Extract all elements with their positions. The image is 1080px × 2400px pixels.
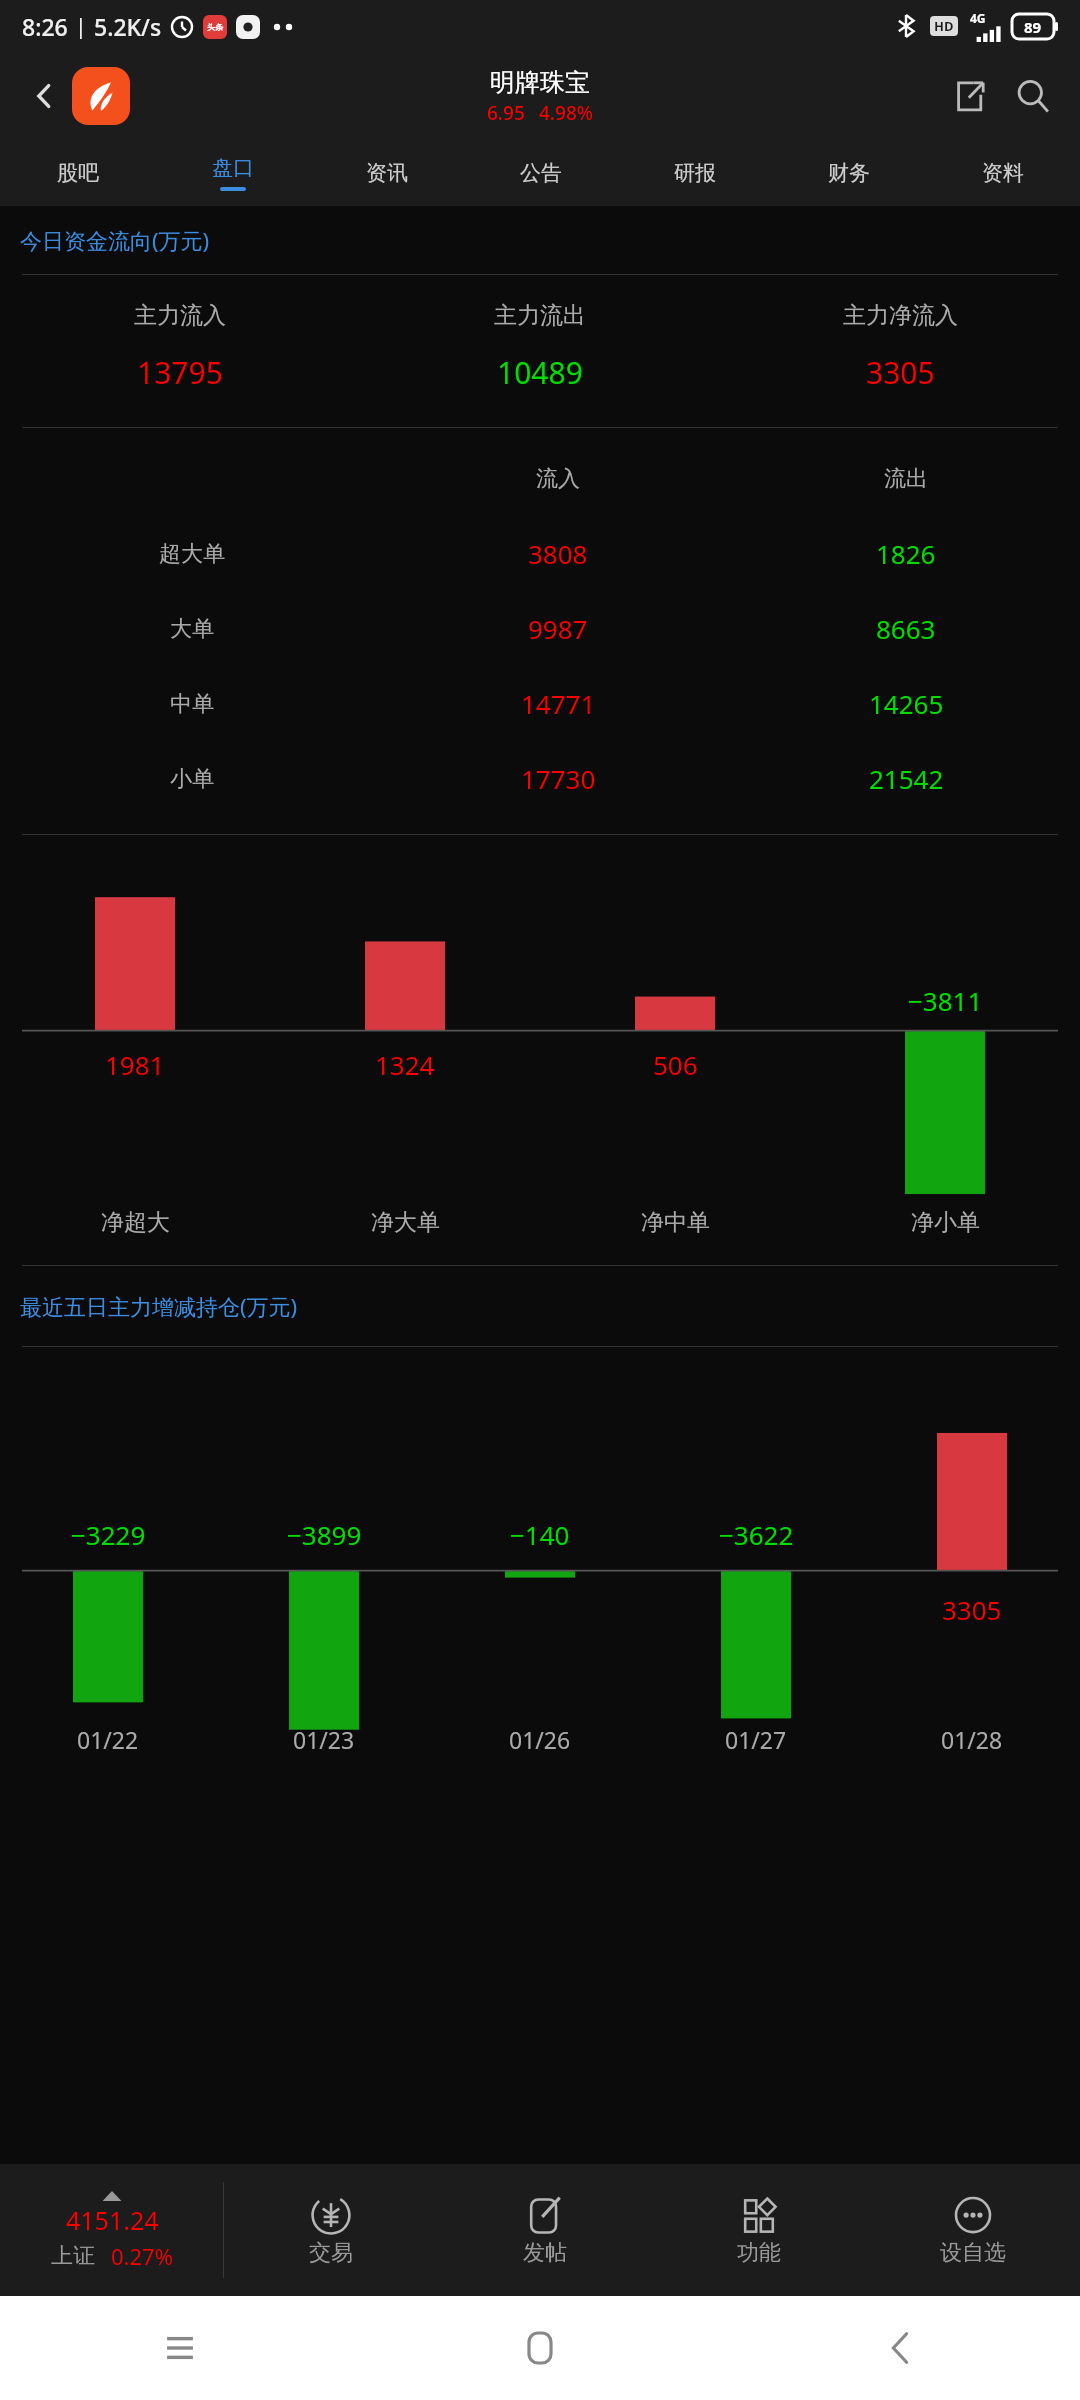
staticText: 今日资金流向(万元): [20, 225, 210, 255]
staticText: 01/28: [941, 1724, 1003, 1755]
staticText: 上证: [51, 2242, 95, 2270]
staticText: 01/27: [725, 1724, 787, 1755]
staticText: 1981: [105, 1047, 165, 1082]
staticText: 3305: [942, 1592, 1002, 1627]
staticText: 主力净流入: [843, 301, 958, 330]
staticText: HD: [934, 17, 954, 35]
staticText: 0.27%: [111, 2241, 173, 2271]
staticText: 最近五日主力增减持仓(万元): [20, 1291, 298, 1321]
staticText: 1324: [375, 1047, 435, 1082]
staticText: 设自选: [940, 2239, 1006, 2267]
staticText: 资料: [982, 160, 1024, 186]
staticText: 公告: [520, 160, 562, 186]
staticText: 6.95: [487, 100, 525, 126]
staticText: 17730: [521, 761, 596, 796]
other: Home: [527, 2331, 553, 2365]
staticText: 4.98%: [539, 100, 593, 126]
button[interactable]: 财务: [772, 140, 926, 206]
staticText: 流入: [536, 465, 580, 493]
staticText: 净中单: [641, 1208, 710, 1237]
staticText: 506: [653, 1047, 698, 1082]
staticText: 9987: [528, 611, 588, 646]
other: Back: [889, 2331, 911, 2365]
button[interactable]: 股吧: [0, 140, 155, 206]
staticText: 净小单: [911, 1208, 980, 1237]
staticText: 3305: [866, 352, 935, 393]
staticText: 8:26: [22, 11, 68, 42]
staticText: 4151.24: [66, 2203, 159, 2237]
button[interactable]: Share: [942, 68, 998, 124]
button[interactable]: 功能: [652, 2164, 866, 2296]
staticText: 功能: [737, 2239, 781, 2267]
staticText: 01/22: [77, 1724, 139, 1755]
staticText: 资讯: [366, 160, 408, 186]
staticText: −3229: [71, 1517, 146, 1552]
staticText: −3622: [719, 1517, 794, 1552]
button[interactable]: 资讯: [310, 140, 464, 206]
staticText: 超大单: [159, 540, 225, 568]
staticText: 14771: [521, 686, 596, 721]
button[interactable]: 盘口: [155, 140, 310, 206]
staticText: 小单: [170, 765, 214, 793]
staticText: 中单: [170, 690, 214, 718]
staticText: −3811: [908, 983, 983, 1018]
button[interactable]: 研报: [618, 140, 772, 206]
staticText: 主力流出: [494, 301, 586, 330]
button[interactable]: 设自选: [866, 2164, 1080, 2296]
staticText: |: [75, 12, 87, 41]
staticText: 明牌珠宝: [490, 67, 590, 98]
button[interactable]: 4151.24: [0, 2164, 223, 2296]
staticText: 14265: [869, 686, 944, 721]
staticText: 净超大: [101, 1208, 170, 1237]
staticText: 净大单: [371, 1208, 440, 1237]
staticText: 1826: [876, 536, 936, 571]
staticText: 头条: [207, 22, 223, 32]
staticText: 89: [1024, 17, 1042, 37]
staticText: 主力流入: [134, 301, 226, 330]
button[interactable]: Back: [16, 68, 72, 124]
button[interactable]: 公告: [464, 140, 618, 206]
button[interactable]: 资料: [926, 140, 1080, 206]
staticText: 大单: [170, 615, 214, 643]
staticText: 流出: [884, 465, 928, 493]
button[interactable]: Search: [1004, 67, 1062, 125]
staticText: −140: [510, 1517, 570, 1552]
staticText: 10489: [497, 352, 583, 393]
other: Recents: [163, 2335, 197, 2361]
staticText: 股吧: [57, 160, 99, 186]
staticText: 研报: [674, 160, 716, 186]
button[interactable]: 交易: [224, 2164, 438, 2296]
staticText: 交易: [309, 2239, 353, 2267]
button[interactable]: App home: [72, 67, 130, 125]
staticText: 4G: [970, 10, 986, 26]
staticText: 01/23: [293, 1724, 355, 1755]
staticText: 01/26: [509, 1724, 571, 1755]
staticText: 5.2K/s: [94, 11, 162, 42]
staticText: 13795: [137, 352, 223, 393]
staticText: 21542: [869, 761, 944, 796]
staticText: 8663: [876, 611, 936, 646]
button[interactable]: 发帖: [438, 2164, 652, 2296]
staticText: −3899: [287, 1517, 362, 1552]
staticText: 盘口: [212, 155, 254, 181]
staticText: 财务: [828, 160, 870, 186]
staticText: 发帖: [523, 2239, 567, 2267]
staticText: 3808: [528, 536, 588, 571]
